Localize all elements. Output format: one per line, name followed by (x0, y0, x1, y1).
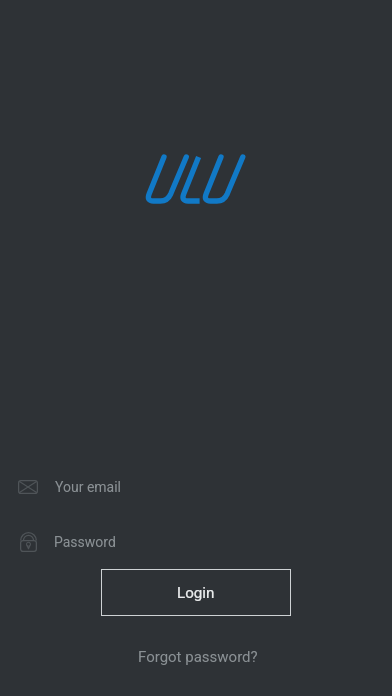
other: Password (20, 532, 37, 552)
staticText: Login (177, 584, 215, 602)
other: Email (18, 480, 38, 494)
staticText: Your email (55, 479, 122, 495)
button[interactable]: Password (0, 521, 392, 563)
other: ULU logo (144, 154, 392, 204)
button[interactable]: Forgot password? (128, 642, 268, 672)
staticText: Password (54, 534, 116, 550)
button[interactable]: Login (101, 569, 291, 616)
button[interactable]: Email (0, 466, 392, 508)
staticText: Forgot password? (138, 648, 258, 666)
